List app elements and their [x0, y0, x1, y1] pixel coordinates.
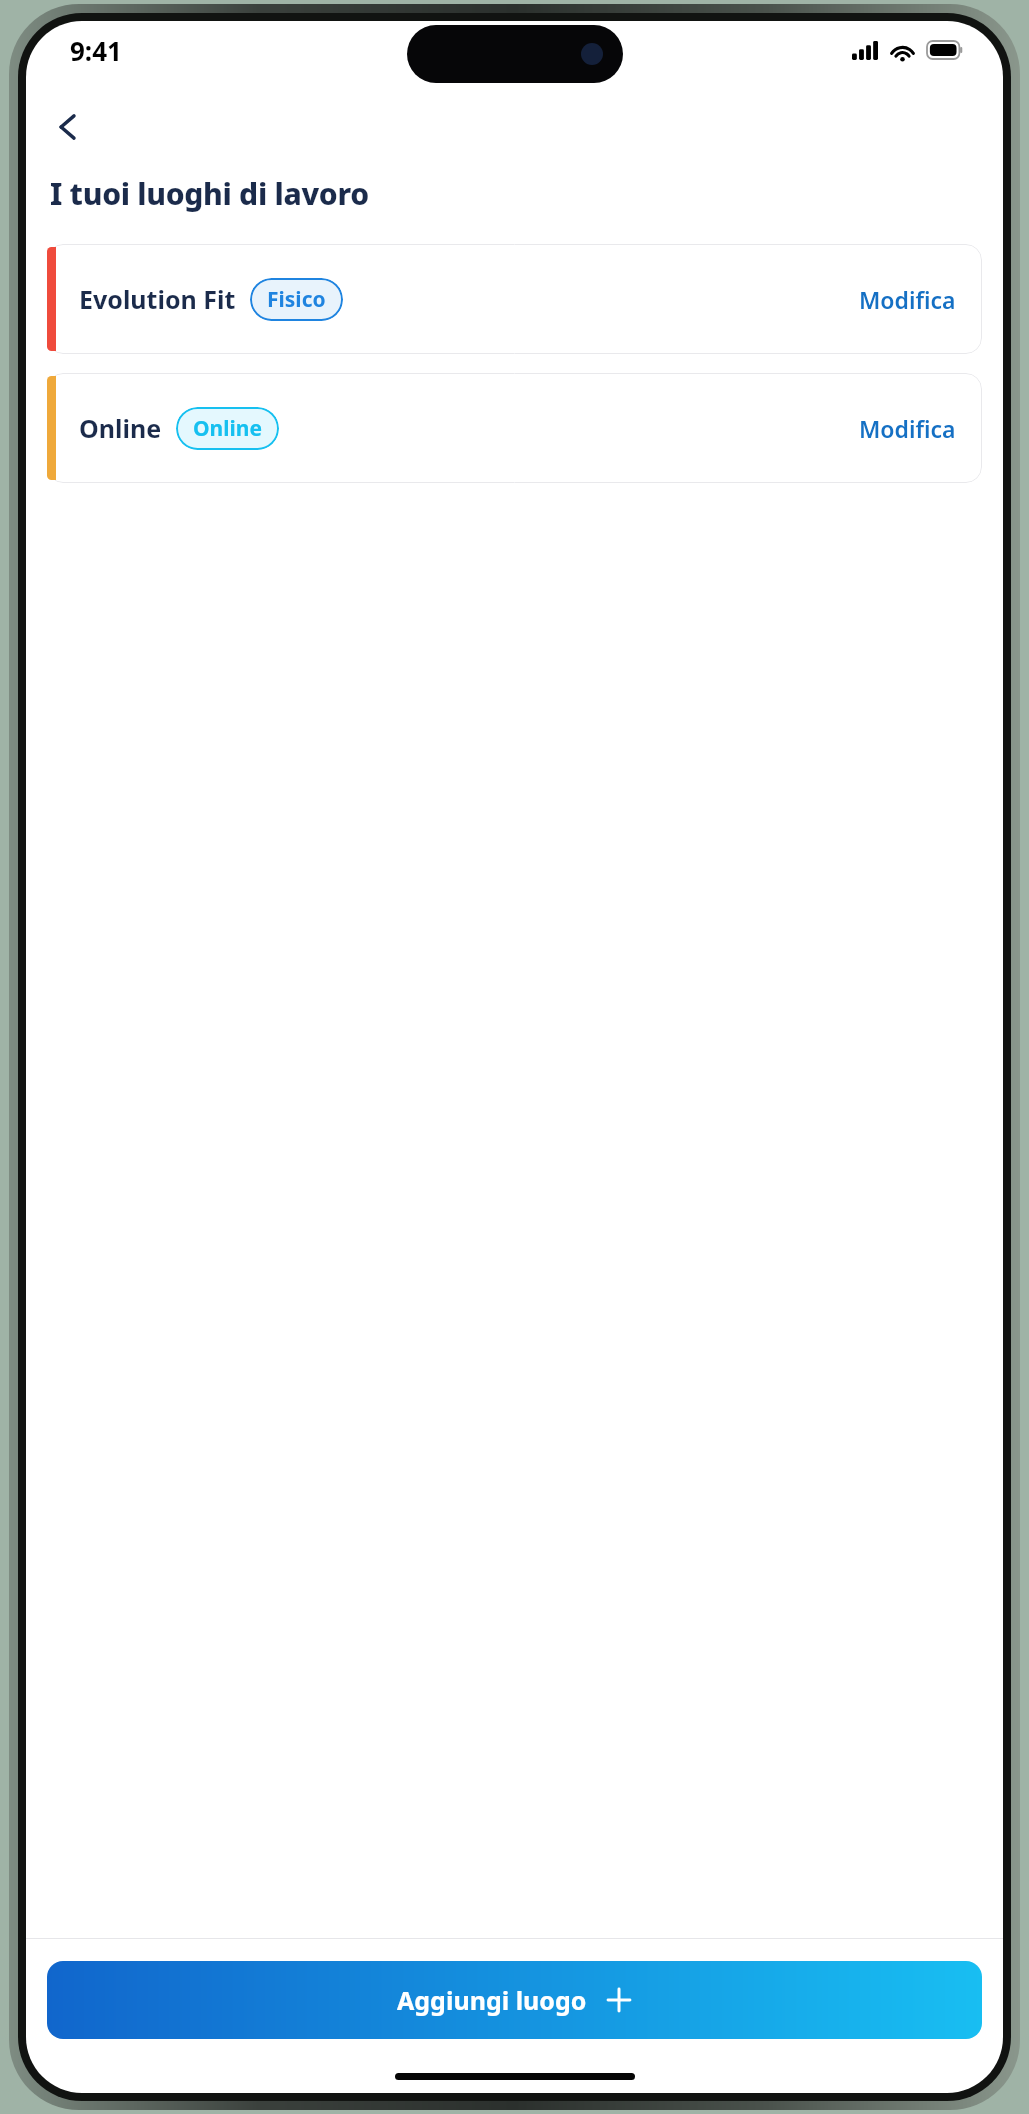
staticText: Aggiungi luogo — [397, 1983, 587, 2017]
button[interactable]: Modifica — [859, 413, 956, 444]
button[interactable]: Evolution Fit — [47, 244, 982, 354]
button[interactable]: Aggiungi luogo — [47, 1961, 982, 2039]
staticText: Online — [79, 411, 162, 445]
staticText: Evolution Fit — [79, 282, 236, 316]
staticText: I tuoi luoghi di lavoro — [50, 173, 369, 214]
button[interactable]: Modifica — [859, 284, 956, 315]
staticText: Online — [193, 414, 262, 443]
button[interactable]: Online — [47, 373, 982, 483]
staticText: 9:41 — [70, 33, 122, 68]
staticText: Fisico — [267, 285, 326, 314]
button[interactable]: Back — [40, 99, 96, 155]
